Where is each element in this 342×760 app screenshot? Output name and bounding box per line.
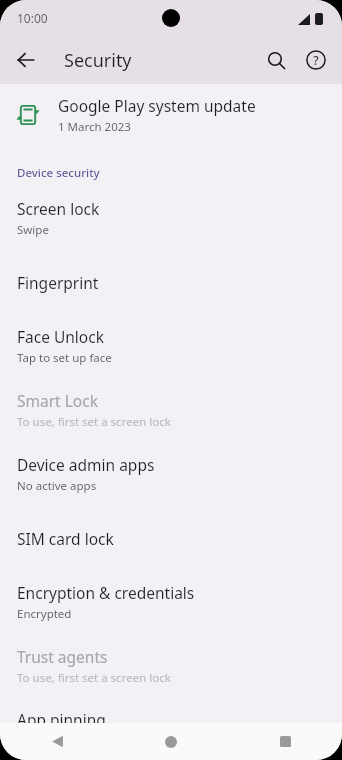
button[interactable]: Help (296, 40, 336, 80)
button[interactable]: Back (0, 723, 114, 760)
button[interactable]: Screen lock (0, 186, 342, 250)
button[interactable]: Face Unlock (0, 314, 342, 378)
staticText: Encrypted (17, 606, 72, 622)
staticText: No active apps (17, 478, 97, 494)
button[interactable]: Encryption & credentials (0, 570, 342, 634)
button[interactable]: Search (256, 40, 296, 80)
button[interactable]: Device admin apps (0, 442, 342, 506)
staticText: 1 March 2023 (58, 119, 131, 135)
staticText: Swipe (17, 222, 49, 238)
staticText: To use, first set a screen lock (17, 414, 171, 430)
staticText: App pinning (17, 709, 106, 730)
staticText: Device security (17, 165, 100, 181)
staticText: Tap to set up face (17, 350, 112, 366)
button[interactable]: Smart Lock (0, 378, 342, 442)
staticText: Fingerprint (17, 272, 99, 293)
button[interactable]: Trust agents (0, 634, 342, 698)
staticText: 10:00 (17, 10, 48, 26)
button[interactable]: App pinning (0, 698, 342, 760)
button[interactable]: Fingerprint (0, 250, 342, 314)
staticText: Screen lock (17, 198, 100, 219)
button[interactable]: Back (6, 40, 46, 80)
staticText: Google Play system update (58, 95, 256, 116)
staticText: Security (64, 48, 132, 73)
button[interactable]: Recent apps (228, 723, 342, 760)
staticText: To use, first set a screen lock (17, 670, 171, 686)
staticText: Device admin apps (17, 454, 155, 475)
staticText: ? (313, 52, 319, 68)
staticText: Encryption & credentials (17, 582, 195, 603)
button[interactable]: SIM card lock (0, 506, 342, 570)
button[interactable]: Google Play system update (0, 84, 342, 146)
staticText: SIM card lock (17, 528, 114, 549)
staticText: Smart Lock (17, 390, 98, 411)
staticText: Face Unlock (17, 326, 104, 347)
button[interactable]: Home (114, 723, 228, 760)
staticText: Trust agents (17, 646, 108, 667)
